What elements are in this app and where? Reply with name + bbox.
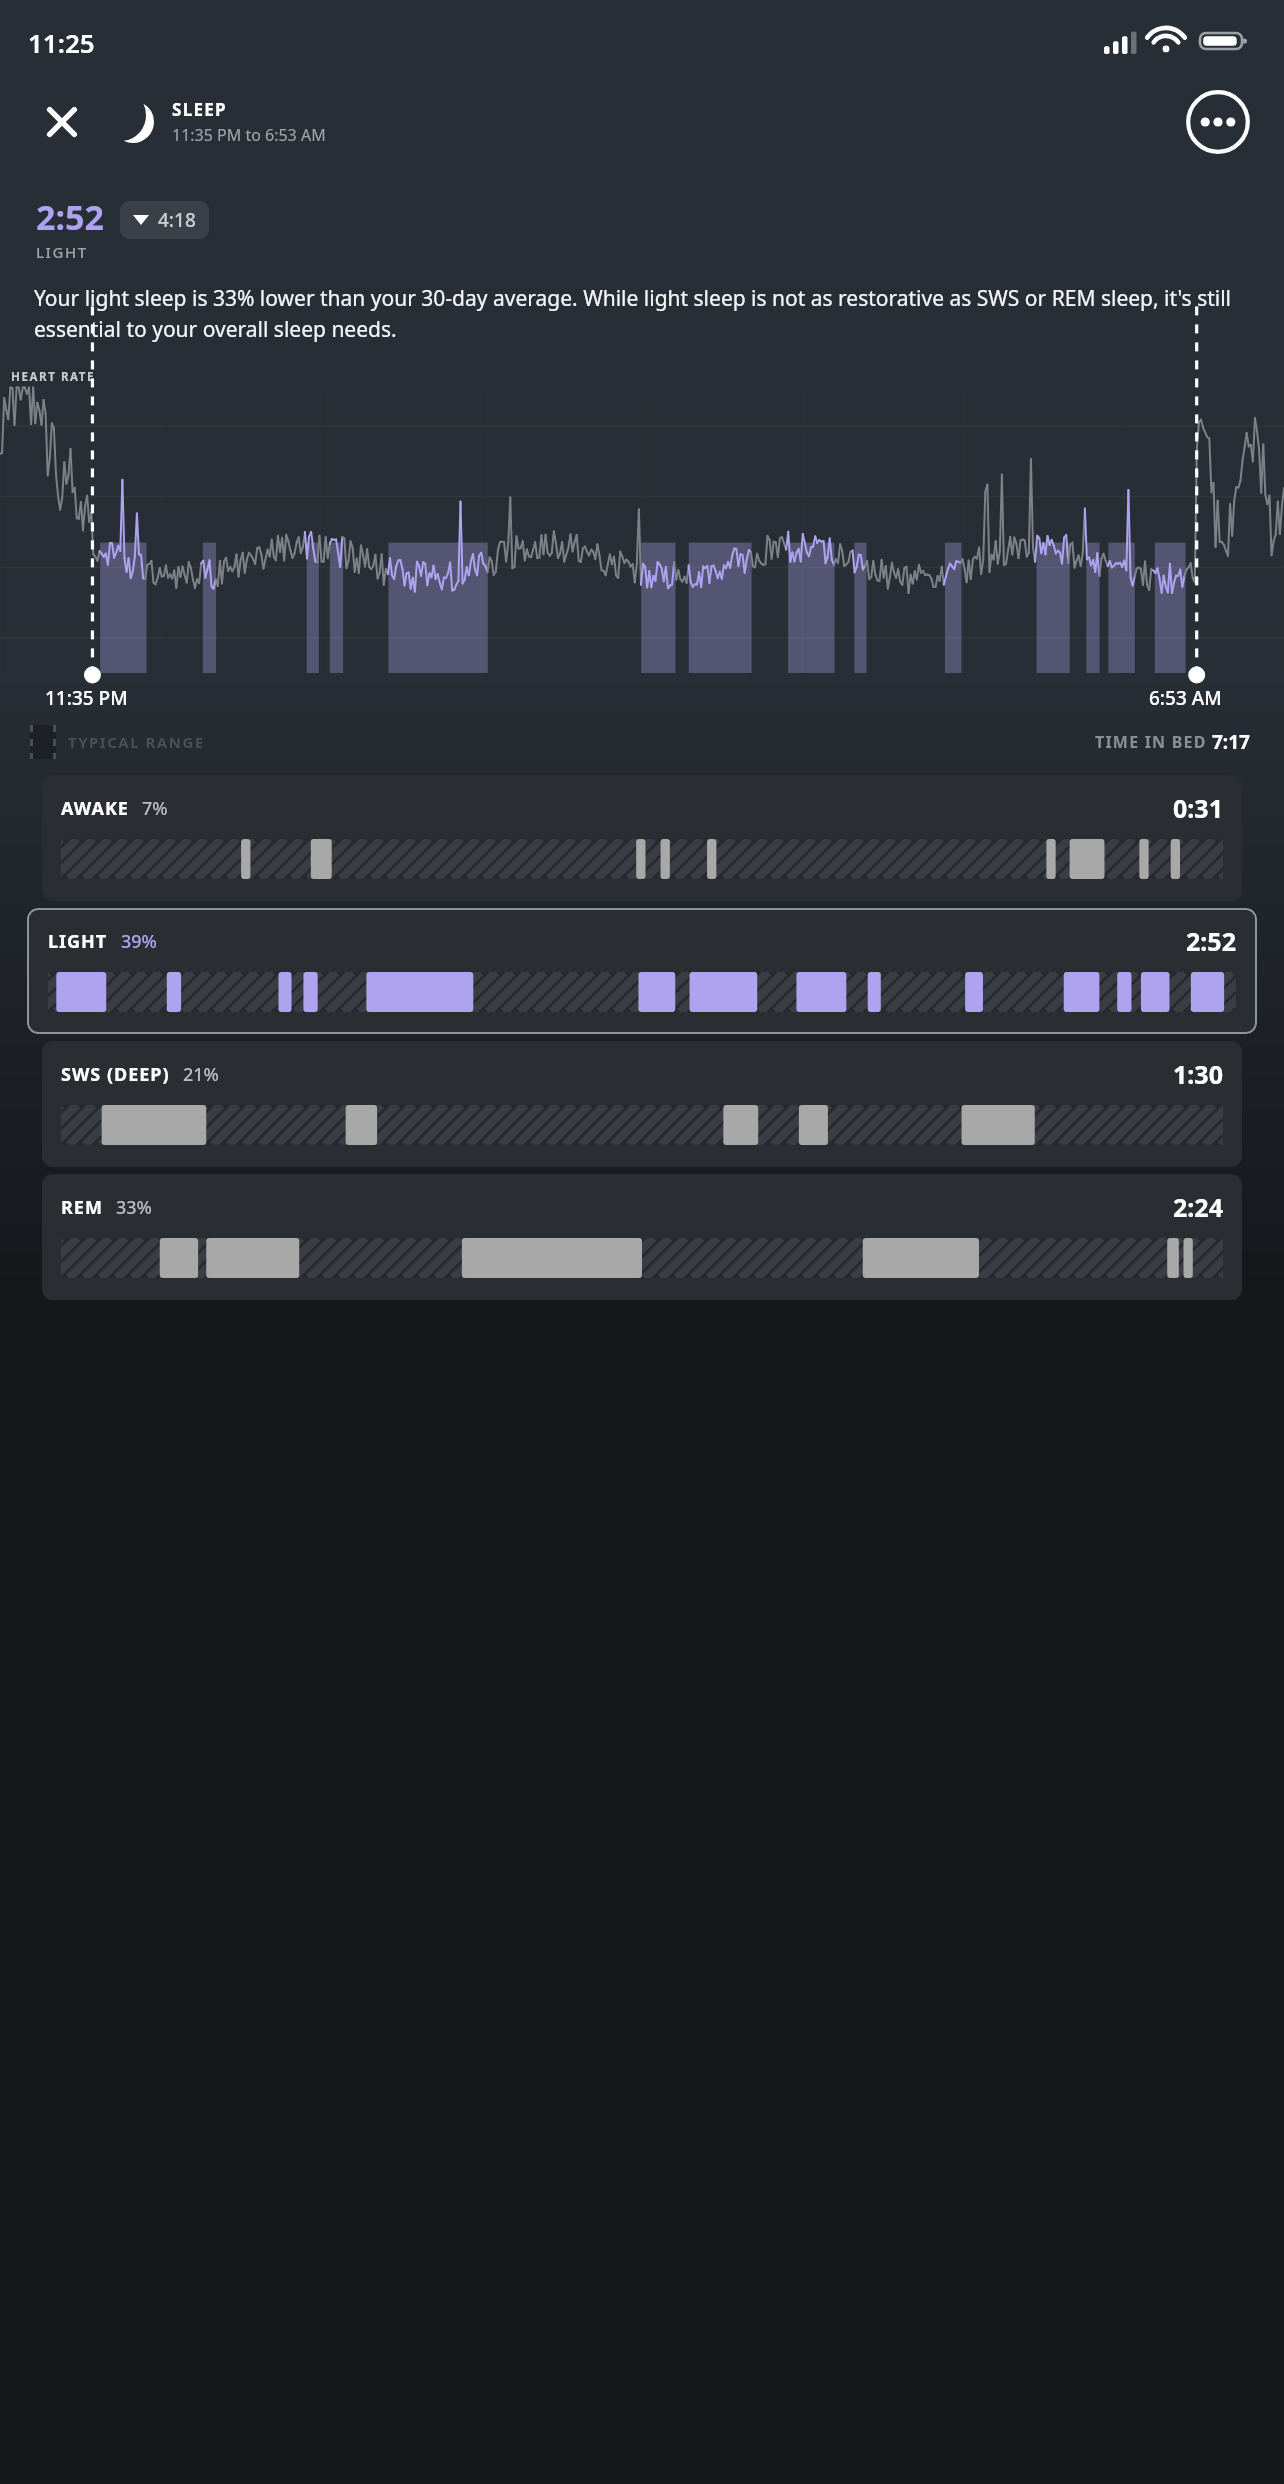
button[interactable]: LIGHT [27, 908, 1257, 1034]
staticText: HEART RATE [11, 369, 96, 385]
staticText: TIME IN BED [1095, 731, 1212, 753]
staticText: SLEEP [172, 98, 227, 121]
staticText: 1:30 [1173, 1057, 1223, 1091]
staticText: LIGHT [36, 242, 88, 262]
staticText: 2:52 [1186, 924, 1236, 958]
staticText: 39% [121, 929, 157, 954]
button[interactable]: Close [40, 100, 84, 144]
staticText: TYPICAL RANGE [68, 732, 205, 752]
staticText: 11:35 PM to 6:53 AM [172, 124, 326, 146]
staticText: 2:52 [36, 194, 104, 240]
staticText: 6:53 AM [1149, 685, 1222, 711]
staticText: Your light sleep is 33% lower than your … [34, 284, 1250, 343]
staticText: 4:18 [158, 207, 196, 233]
staticText: 2:24 [1173, 1190, 1223, 1224]
staticText: 11:35 PM [45, 685, 128, 711]
button[interactable]: 4:18 [120, 201, 209, 239]
staticText: 21% [183, 1062, 219, 1087]
button[interactable]: AWAKE [42, 775, 1242, 901]
button[interactable]: SWS (DEEP) [42, 1041, 1242, 1167]
staticText: 33% [116, 1195, 152, 1220]
staticText: 7:17 [1212, 729, 1250, 755]
staticText: SWS (DEEP) [61, 1062, 170, 1087]
button[interactable]: REM [42, 1174, 1242, 1300]
button[interactable]: More options [1186, 90, 1250, 154]
staticText: REM [61, 1195, 103, 1220]
staticText: AWAKE [61, 796, 129, 821]
staticText: LIGHT [48, 929, 108, 954]
staticText: 11:25 [28, 25, 95, 60]
staticText: 7% [142, 796, 168, 821]
staticText: 0:31 [1173, 791, 1223, 825]
